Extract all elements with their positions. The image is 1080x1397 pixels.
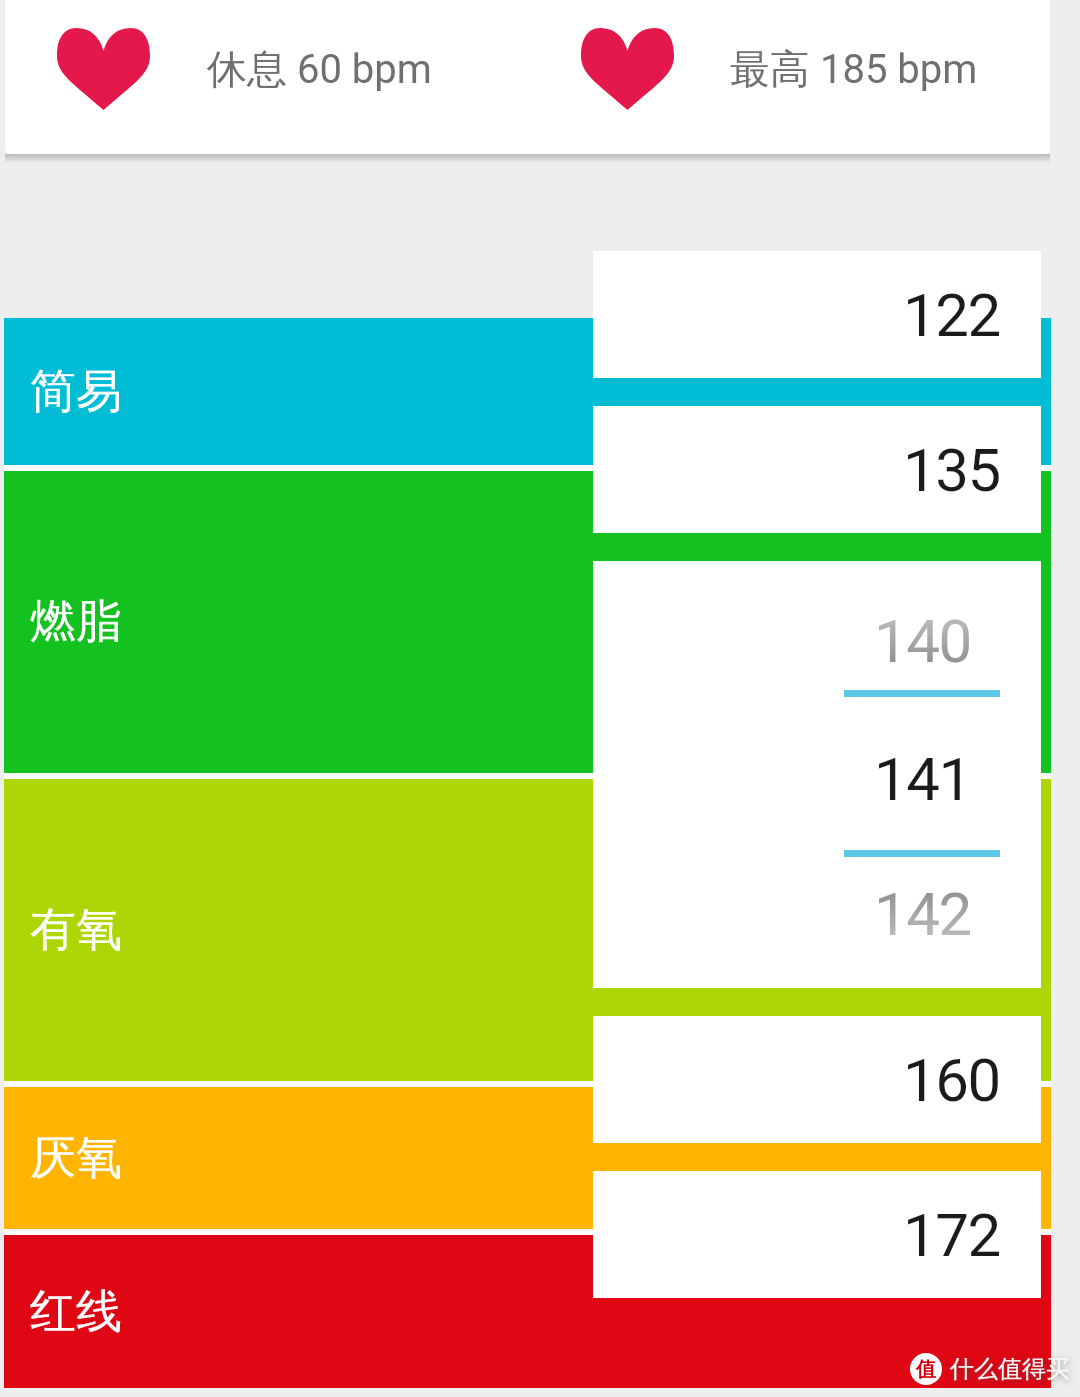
staticText: 燃脂 xyxy=(30,593,122,651)
staticText: 红线 xyxy=(30,1283,122,1341)
staticText: 122 xyxy=(903,280,1000,350)
button[interactable]: 有氧 xyxy=(4,779,1051,1081)
staticText: 172 xyxy=(903,1200,1000,1270)
button[interactable]: 160 xyxy=(593,1016,1041,1143)
staticText: 简易 xyxy=(30,363,122,421)
staticText: 厌氧 xyxy=(30,1129,122,1187)
staticText: 141 xyxy=(874,744,971,814)
button[interactable]: 燃脂 xyxy=(4,471,1051,773)
staticText: 最高 185 bpm xyxy=(730,44,978,94)
button[interactable]: 122 xyxy=(593,251,1041,378)
staticText: 休息 60 bpm xyxy=(207,44,432,94)
button[interactable]: 厌氧 xyxy=(4,1087,1051,1229)
staticText: 什么值得买 xyxy=(950,1354,1070,1384)
button[interactable]: 红线 xyxy=(4,1235,1051,1388)
button[interactable]: 172 xyxy=(593,1171,1041,1298)
button[interactable]: 简易 xyxy=(4,318,1051,465)
button[interactable]: 休息 60 bpm xyxy=(5,0,1050,154)
staticText: 160 xyxy=(903,1045,1000,1115)
staticText: 135 xyxy=(903,435,1000,505)
staticText: 142 xyxy=(874,879,971,949)
staticText: 值 xyxy=(916,1357,936,1382)
staticText: 140 xyxy=(874,606,971,676)
button[interactable]: 135 xyxy=(593,406,1041,533)
staticText: 有氧 xyxy=(30,901,122,959)
button[interactable]: 140 xyxy=(593,561,1041,988)
